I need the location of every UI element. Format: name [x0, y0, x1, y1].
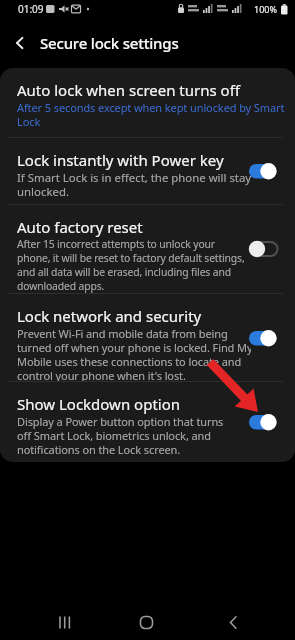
staticText: Show Lockdown option — [17, 394, 181, 414]
button[interactable] — [249, 329, 279, 347]
button[interactable] — [249, 240, 279, 258]
button[interactable]: Lock instantly with Power key — [0, 138, 295, 204]
staticText: Lock instantly with Power key — [17, 150, 224, 170]
button[interactable]: Lock network and security — [0, 294, 295, 381]
staticText: 100% — [254, 3, 277, 15]
staticText: After 5 seconds except when kept unlocke… — [17, 100, 285, 129]
button[interactable] — [249, 162, 279, 180]
staticText: Prevent Wi-Fi and mobile data from being… — [17, 326, 251, 381]
button[interactable]: Auto factory reset — [0, 205, 295, 293]
staticText: 01:09 — [18, 2, 44, 16]
button[interactable]: Auto lock when screen turns off — [0, 68, 295, 137]
button[interactable] — [217, 606, 250, 639]
staticText: Auto factory reset — [17, 217, 143, 237]
button[interactable]: Show Lockdown option — [0, 382, 295, 462]
staticText: After 15 incorrect attempts to unlock yo… — [17, 237, 245, 293]
button[interactable] — [249, 413, 279, 431]
staticText: Display a Power button option that turns… — [17, 414, 224, 457]
button[interactable] — [130, 606, 163, 639]
button[interactable] — [5, 28, 35, 58]
button[interactable] — [49, 606, 82, 639]
staticText: Auto lock when screen turns off — [17, 80, 240, 100]
staticText: Secure lock settings — [40, 33, 179, 53]
staticText: Lock network and security — [17, 306, 202, 326]
staticText: If Smart Lock is in effect, the phone wi… — [17, 170, 251, 199]
